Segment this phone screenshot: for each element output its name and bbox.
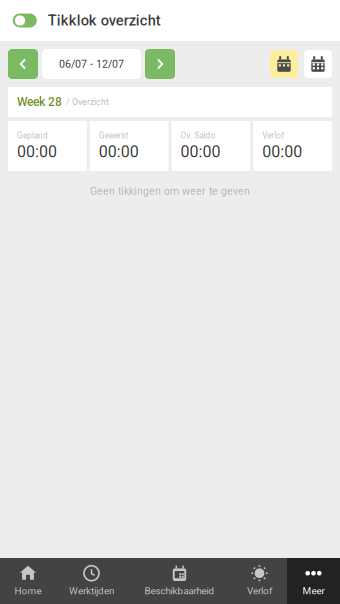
button[interactable]: Maandoverzicht <box>304 50 332 78</box>
staticText: Gepland <box>17 131 48 140</box>
staticText: Werktijden <box>69 585 114 597</box>
button[interactable]: Volgende week <box>145 49 175 79</box>
staticText: Tikklok overzicht <box>48 12 161 29</box>
button[interactable]: Menu <box>11 8 39 32</box>
staticText: Week 28 <box>17 95 62 109</box>
button[interactable]: Weekoverzicht <box>270 50 298 78</box>
staticText: 00:00 <box>262 142 302 161</box>
button[interactable]: Beschikbaarheid <box>127 558 232 604</box>
staticText: Gewerkt <box>99 131 129 140</box>
button[interactable]: Home <box>0 558 56 604</box>
staticText: Verlof <box>247 585 272 597</box>
staticText: Beschikbaarheid <box>144 585 214 597</box>
button[interactable]: Werktijden <box>56 558 127 604</box>
staticText: Ov. Saldo <box>180 131 215 140</box>
button[interactable]: Vorige week <box>8 49 38 79</box>
staticText: 00:00 <box>17 142 57 161</box>
staticText: 00:00 <box>180 142 220 161</box>
staticText: 06/07 - 12/07 <box>59 58 124 70</box>
staticText: 00:00 <box>99 142 139 161</box>
staticText: Meer <box>302 585 324 597</box>
staticText: Verlof <box>262 131 284 140</box>
staticText: Geen tikkingen om weer te geven <box>90 185 250 197</box>
button[interactable]: Meer <box>287 558 340 604</box>
staticText: / Overzicht <box>66 97 109 107</box>
button[interactable]: Verlof <box>232 558 287 604</box>
staticText: Home <box>14 585 41 597</box>
